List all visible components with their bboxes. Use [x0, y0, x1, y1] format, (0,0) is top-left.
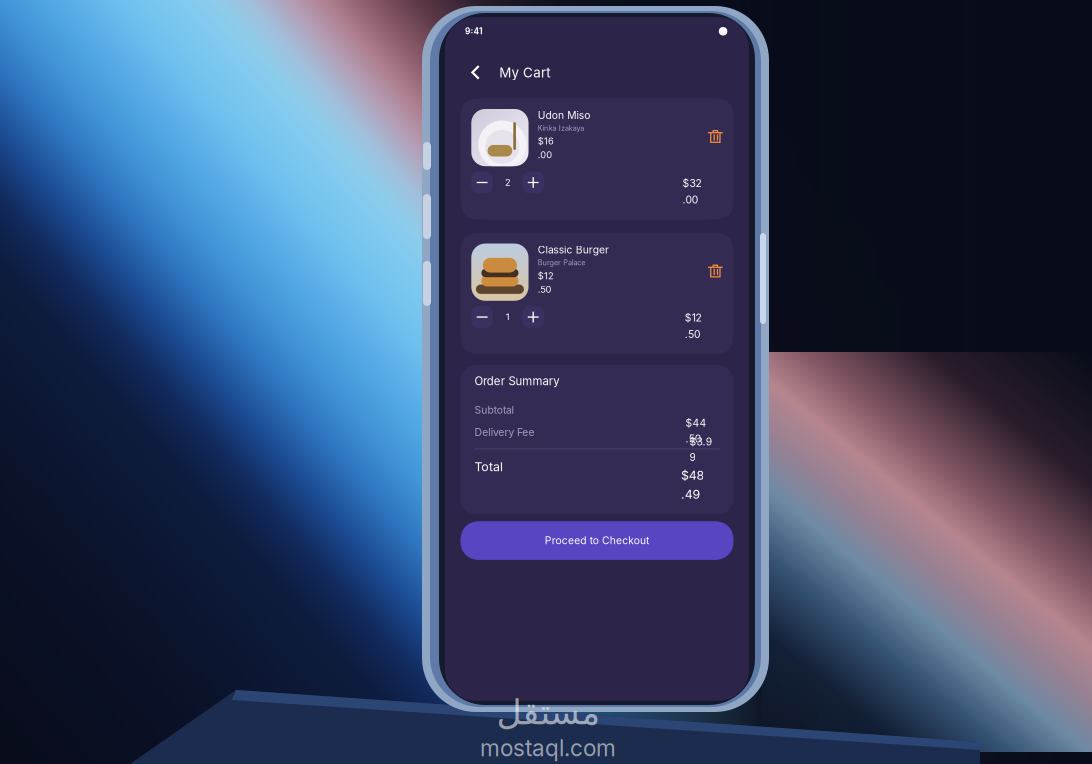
staticText: .49 [750, 624, 775, 644]
staticText: $32 [752, 224, 777, 240]
staticText: mostaql.com [480, 734, 616, 762]
staticText: Subtotal [483, 517, 534, 533]
staticText: My Cart [515, 78, 582, 99]
staticText: $48 [750, 600, 780, 619]
staticText: $3.9 [761, 558, 790, 574]
staticText: Proceed to Checkout [574, 686, 709, 702]
button[interactable]: Proceed to Checkout [465, 669, 818, 719]
staticText: مستقل [496, 692, 600, 732]
button[interactable]: Decrease quantity [479, 217, 507, 245]
staticText: Delivery Fee [483, 546, 561, 562]
button[interactable]: Increase quantity [545, 217, 573, 245]
staticText: .50 [755, 419, 775, 435]
button[interactable]: Back [467, 72, 501, 106]
staticText: .50 [565, 362, 583, 376]
button[interactable]: Decrease quantity [479, 391, 507, 419]
staticText: $44 [756, 534, 783, 550]
button[interactable]: Remove Classic Burger [785, 336, 804, 355]
staticText: .00 [752, 245, 772, 261]
staticText: 9:41 [471, 29, 494, 42]
staticText: $12 [755, 398, 777, 414]
staticText: $12 [565, 344, 585, 359]
staticText: .50 [756, 554, 776, 570]
staticText: 2 [522, 224, 529, 238]
